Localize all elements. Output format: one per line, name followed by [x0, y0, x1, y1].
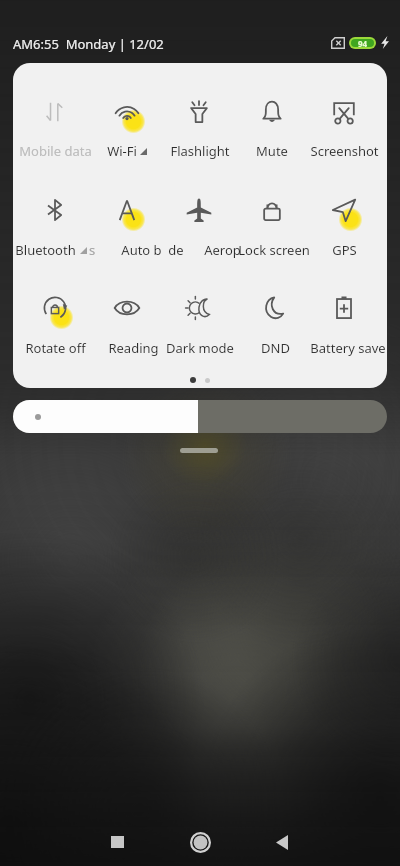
button[interactable] [91, 88, 163, 156]
staticText: Lock screen [238, 241, 310, 259]
staticText: Bluetooth [15, 241, 76, 259]
staticText: Mute [256, 142, 288, 160]
staticText: Rotate off [25, 339, 86, 357]
staticText: Aerop [204, 241, 241, 259]
button[interactable]: Home [172, 818, 228, 866]
staticText: DND [261, 339, 290, 357]
button[interactable]: Back [254, 818, 310, 866]
button[interactable] [308, 88, 380, 156]
staticText: Auto b de [121, 241, 184, 259]
button[interactable] [236, 88, 308, 156]
staticText: Screenshot [310, 142, 379, 160]
button[interactable] [19, 186, 91, 254]
button[interactable] [163, 186, 235, 254]
button[interactable] [19, 284, 91, 352]
staticText: 94 [358, 38, 368, 49]
button[interactable] [163, 88, 235, 156]
button[interactable]: Recents [89, 818, 145, 866]
button[interactable] [19, 88, 91, 156]
button[interactable] [13, 400, 387, 433]
staticText: AM6:55 Monday | 12/02 [13, 35, 164, 53]
staticText: Dark mode [166, 339, 234, 357]
staticText: Wi-Fi [107, 142, 137, 160]
button[interactable] [91, 186, 163, 254]
staticText: GPS [332, 241, 357, 259]
staticText: s [89, 241, 96, 259]
staticText: Flashlight [170, 142, 230, 160]
button[interactable] [236, 186, 308, 254]
button[interactable] [308, 284, 380, 352]
staticText: Mobile data [19, 142, 92, 160]
button[interactable] [308, 186, 380, 254]
button[interactable] [163, 284, 235, 352]
staticText: Reading [108, 339, 159, 357]
button[interactable] [236, 284, 308, 352]
button[interactable] [91, 284, 163, 352]
staticText: Battery save [310, 339, 386, 357]
